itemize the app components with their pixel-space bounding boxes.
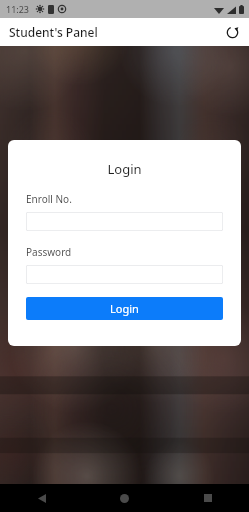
button[interactable] (26, 212, 223, 231)
button[interactable]: Refresh (221, 21, 243, 43)
staticText: Password (26, 245, 72, 259)
staticText: Enroll No. (26, 192, 72, 206)
staticText: Login (26, 160, 223, 178)
staticText: Login (110, 301, 139, 316)
staticText: Student's Panel (9, 24, 98, 40)
button[interactable] (26, 265, 223, 284)
button[interactable]: Recent apps (166, 484, 249, 512)
staticText: 11:23 (6, 3, 30, 15)
button[interactable]: Back (0, 484, 83, 512)
button[interactable]: Home (83, 484, 166, 512)
button[interactable]: Login (26, 297, 223, 320)
